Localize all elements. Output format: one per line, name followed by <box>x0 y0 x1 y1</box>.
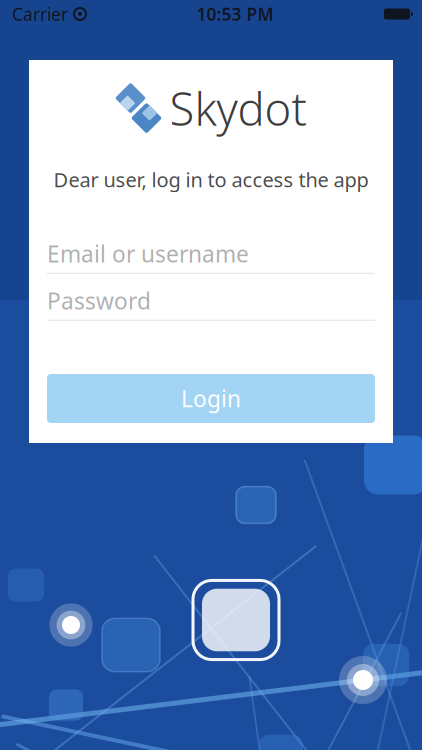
button[interactable]: Password <box>47 282 375 321</box>
staticText: Login <box>181 383 241 413</box>
staticText: Password <box>47 286 151 316</box>
staticText: Skydot <box>169 78 306 138</box>
staticText: Email or username <box>47 239 249 269</box>
staticText: Dear user, log in to access the app <box>53 166 368 193</box>
button[interactable]: Email or username <box>47 235 375 274</box>
staticText: Carrier <box>12 2 68 25</box>
staticText: 10:53 PM <box>196 2 273 25</box>
button[interactable]: Login <box>47 374 375 423</box>
